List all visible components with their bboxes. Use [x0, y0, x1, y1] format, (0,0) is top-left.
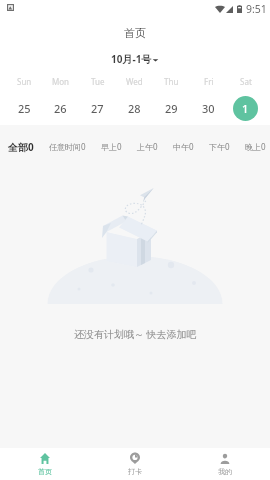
button[interactable]: 全部0	[8, 140, 34, 154]
staticText: 28	[128, 101, 141, 116]
staticText: 还没有计划哦～ 快去添加吧	[74, 327, 197, 341]
staticText: 任意时间0	[49, 141, 86, 152]
staticText: Fri	[204, 76, 214, 87]
staticText: 25	[18, 101, 31, 116]
staticText: 首页	[38, 467, 52, 476]
button[interactable]: 任意时间0	[49, 141, 86, 152]
button[interactable]: 早上0	[101, 141, 122, 152]
staticText: 早上0	[101, 141, 122, 152]
staticText: Thu	[164, 76, 179, 87]
button[interactable]: 我的	[180, 453, 270, 476]
staticText: Sun	[17, 76, 32, 87]
button[interactable]: 下午0	[209, 141, 230, 152]
staticText: 下午0	[209, 141, 230, 152]
other: Screenshot notification	[7, 4, 14, 11]
staticText: 27	[91, 101, 104, 116]
staticText: 我的	[218, 467, 232, 476]
button[interactable]: 28	[122, 96, 147, 121]
staticText: 30	[202, 101, 215, 116]
staticText: 26	[54, 101, 67, 116]
staticText: 晚上0	[245, 141, 266, 152]
staticText: 打卡	[128, 467, 142, 476]
button[interactable]: 26	[48, 96, 73, 121]
button[interactable]: 晚上0	[245, 141, 266, 152]
staticText: Sat	[240, 76, 252, 87]
button[interactable]: 1	[233, 96, 258, 121]
staticText: 29	[165, 101, 178, 116]
staticText: 首页	[124, 26, 146, 40]
staticText: 1	[242, 101, 249, 116]
button[interactable]: 30	[196, 96, 221, 121]
button[interactable]: 中午0	[173, 141, 194, 152]
staticText: 上午0	[137, 141, 158, 152]
button[interactable]: 10月-1号	[111, 52, 159, 66]
button[interactable]: 25	[12, 96, 37, 121]
staticText: 10月-1号	[111, 52, 152, 66]
staticText: 中午0	[173, 141, 194, 152]
button[interactable]: 打卡	[90, 453, 180, 476]
button[interactable]: 首页	[0, 453, 90, 476]
button[interactable]: 上午0	[137, 141, 158, 152]
staticText: Wed	[126, 76, 143, 87]
button[interactable]: 29	[159, 96, 184, 121]
staticText: Mon	[52, 76, 70, 87]
staticText: Tue	[91, 76, 105, 87]
staticText: 9:51	[246, 2, 267, 16]
button[interactable]: 27	[85, 96, 110, 121]
staticText: 全部0	[8, 140, 34, 154]
